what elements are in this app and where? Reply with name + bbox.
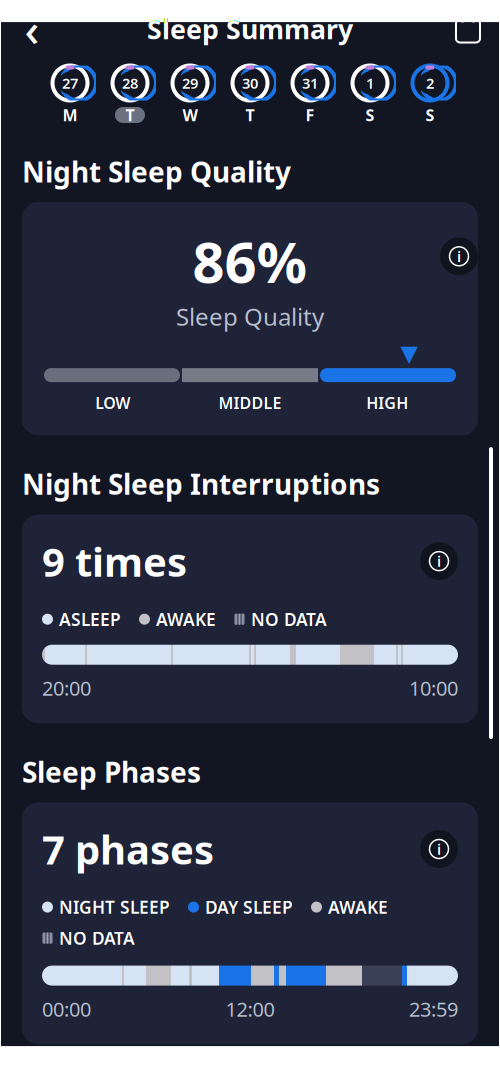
- staticText: W: [182, 104, 197, 126]
- staticText: 12:00: [225, 996, 274, 1022]
- button[interactable]: More information: [420, 542, 458, 580]
- staticText: MIDDLE: [218, 392, 281, 413]
- staticText: M: [62, 104, 77, 126]
- staticText: 29: [182, 73, 198, 93]
- staticText: 20:00: [42, 675, 91, 701]
- staticText: 30: [242, 73, 258, 93]
- button[interactable]: 29: [160, 64, 220, 123]
- staticText: 10:00: [409, 675, 458, 701]
- staticText: 28: [122, 73, 138, 93]
- staticText: Sleep Phases: [22, 753, 201, 790]
- button[interactable]: 31: [280, 64, 340, 123]
- staticText: AWAKE: [328, 896, 388, 919]
- staticText: T: [125, 104, 134, 126]
- staticText: Night Sleep Interruptions: [22, 465, 380, 503]
- staticText: Sleep Summary: [147, 11, 353, 47]
- staticText: NO DATA: [59, 927, 135, 950]
- staticText: 27: [62, 73, 78, 93]
- staticText: 7 phases: [42, 822, 214, 876]
- staticText: HIGH: [366, 392, 408, 413]
- staticText: NIGHT SLEEP: [59, 896, 170, 919]
- button[interactable]: More information: [420, 830, 458, 868]
- staticText: DAY SLEEP: [205, 896, 293, 919]
- staticText: 1: [366, 73, 374, 93]
- staticText: F: [305, 104, 314, 126]
- staticText: S: [425, 104, 434, 126]
- staticText: ‹: [24, 0, 39, 59]
- button[interactable]: 30: [220, 64, 280, 123]
- staticText: T: [245, 104, 254, 126]
- staticText: NO DATA: [251, 608, 327, 631]
- staticText: 00:00: [42, 996, 91, 1022]
- button[interactable]: Back: [12, 9, 52, 49]
- button[interactable]: Calendar: [448, 9, 488, 49]
- staticText: ▼: [400, 340, 417, 366]
- button[interactable]: 1: [340, 64, 400, 123]
- staticText: Sleep Quality: [176, 300, 324, 332]
- staticText: AWAKE: [156, 608, 216, 631]
- staticText: LOW: [95, 392, 130, 413]
- staticText: 2: [426, 73, 434, 93]
- staticText: 9 times: [42, 535, 187, 588]
- staticText: 31: [302, 73, 318, 93]
- staticText: i: [457, 247, 461, 266]
- staticText: 23:59: [409, 996, 458, 1022]
- staticText: i: [437, 551, 441, 571]
- button[interactable]: More information: [440, 237, 478, 275]
- staticText: i: [437, 839, 441, 859]
- staticText: 86%: [192, 224, 307, 299]
- button[interactable]: 28: [100, 64, 160, 123]
- staticText: Night Sleep Quality: [22, 153, 291, 190]
- button[interactable]: 2: [400, 64, 460, 123]
- button[interactable]: 27: [40, 64, 100, 123]
- staticText: S: [365, 104, 374, 126]
- staticText: ASLEEP: [59, 608, 121, 631]
